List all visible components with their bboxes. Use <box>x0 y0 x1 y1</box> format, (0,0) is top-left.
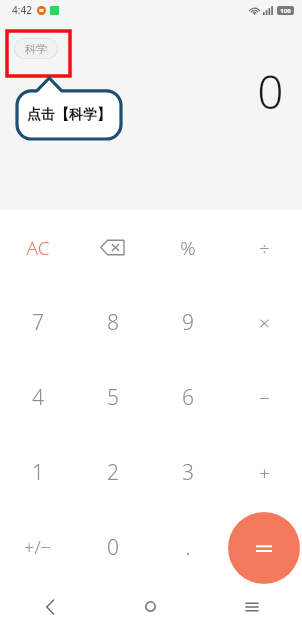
button[interactable]: 7 <box>0 285 75 360</box>
button[interactable]: Equals <box>226 510 302 585</box>
staticText: ÷ <box>259 235 270 261</box>
staticText: 4:42 <box>12 3 32 17</box>
staticText: 0 <box>107 533 119 562</box>
button[interactable]: − <box>226 360 302 435</box>
staticText: 8 <box>107 308 119 337</box>
staticText: 3 <box>182 458 194 487</box>
staticText: AC <box>26 235 50 261</box>
staticText: 100 <box>280 7 291 15</box>
button[interactable]: × <box>226 285 302 360</box>
staticText: 6 <box>182 383 194 412</box>
button[interactable]: Recent apps <box>201 585 302 628</box>
button[interactable]: AC <box>0 210 75 285</box>
button[interactable]: + <box>226 435 302 510</box>
staticText: 5 <box>107 383 119 412</box>
button[interactable]: 科学 <box>14 38 58 59</box>
staticText: . <box>185 533 191 562</box>
button[interactable]: Backspace <box>75 210 150 285</box>
button[interactable]: +/− <box>0 510 75 585</box>
staticText: 2 <box>107 458 119 487</box>
button[interactable]: 8 <box>75 285 150 360</box>
button[interactable]: 6 <box>150 360 226 435</box>
button[interactable]: Back <box>0 585 100 628</box>
staticText: + <box>259 460 270 486</box>
button[interactable]: 0 <box>75 510 150 585</box>
button[interactable]: 9 <box>150 285 226 360</box>
staticText: 9 <box>182 308 194 337</box>
staticText: 点击【科学】 <box>27 106 111 124</box>
button[interactable]: ÷ <box>226 210 302 285</box>
button[interactable]: 3 <box>150 435 226 510</box>
staticText: 1 <box>32 458 44 487</box>
button[interactable]: Home <box>100 585 201 628</box>
button[interactable]: Equals <box>228 512 300 584</box>
staticText: × <box>259 310 270 336</box>
button[interactable]: 4 <box>0 360 75 435</box>
staticText: 7 <box>32 308 44 337</box>
staticText: +/− <box>24 535 51 560</box>
staticText: 科学 <box>25 42 47 56</box>
staticText: − <box>259 385 270 411</box>
button[interactable]: % <box>150 210 226 285</box>
staticText: 4 <box>32 383 44 412</box>
staticText: % <box>180 235 196 261</box>
button[interactable]: 1 <box>0 435 75 510</box>
button[interactable]: 5 <box>75 360 150 435</box>
staticText: 0 <box>257 60 284 123</box>
button[interactable]: 2 <box>75 435 150 510</box>
